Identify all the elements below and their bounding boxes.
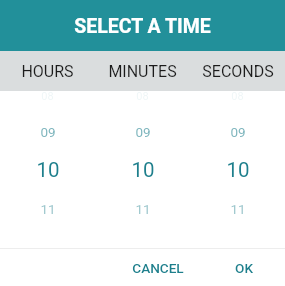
staticText: CANCEL — [132, 260, 184, 276]
staticText: 09 — [40, 124, 56, 140]
staticText: 08 — [136, 90, 149, 103]
staticText: OK — [235, 260, 253, 276]
staticText: 11 — [230, 201, 246, 217]
button[interactable]: Hours — [0, 91, 95, 248]
staticText: SELECT A TIME — [74, 15, 211, 38]
button[interactable]: OK — [225, 252, 263, 284]
button[interactable]: SECONDS — [190, 51, 285, 91]
staticText: 09 — [230, 124, 246, 140]
button[interactable]: Seconds — [190, 91, 285, 248]
staticText: SECONDS — [202, 62, 274, 81]
button[interactable]: MINUTES — [95, 51, 190, 91]
staticText: 10 — [131, 158, 155, 182]
staticText: 10 — [226, 158, 250, 182]
staticText: 08 — [41, 90, 54, 103]
staticText: 08 — [231, 90, 244, 103]
button[interactable]: Minutes — [95, 91, 190, 248]
staticText: 11 — [135, 201, 151, 217]
button[interactable]: HOURS — [0, 51, 95, 91]
staticText: 09 — [135, 124, 151, 140]
staticText: MINUTES — [108, 62, 177, 81]
staticText: 11 — [40, 201, 56, 217]
button[interactable]: CANCEL — [122, 252, 194, 284]
staticText: HOURS — [21, 62, 74, 81]
staticText: 10 — [36, 158, 60, 182]
